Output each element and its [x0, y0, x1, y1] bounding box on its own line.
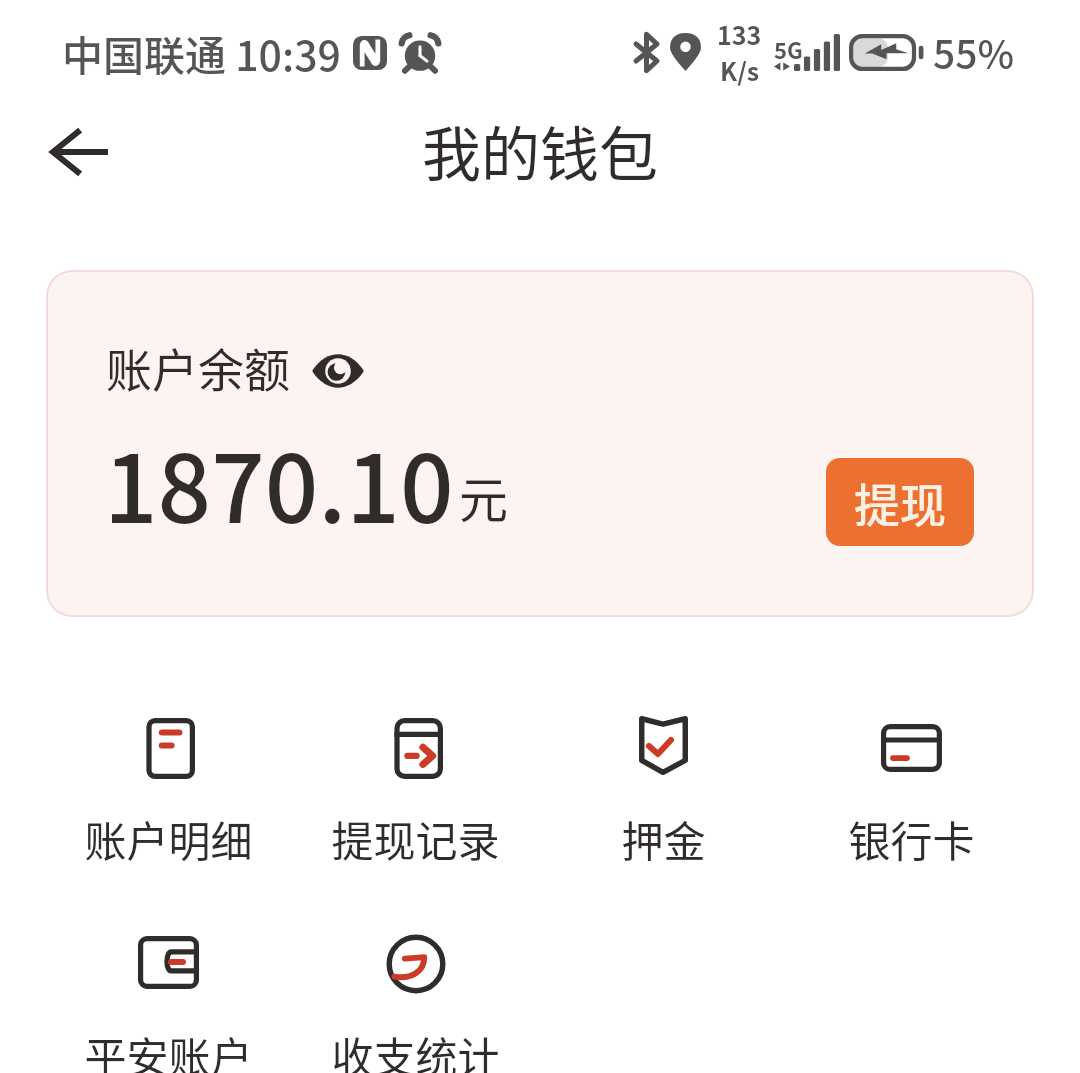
- button[interactable]: 提现记录: [292, 698, 539, 883]
- staticText: 我的钱包: [422, 108, 659, 193]
- staticText: 平安账户: [84, 1024, 253, 1073]
- staticText: 账户明细: [84, 808, 253, 869]
- staticText: 押金: [621, 808, 706, 869]
- button[interactable]: 银行卡: [787, 698, 1035, 883]
- staticText: 5G: [774, 33, 803, 65]
- button[interactable]: 收支统计: [292, 914, 539, 1073]
- staticText: 133: [717, 16, 762, 52]
- staticText: 55%: [933, 24, 1015, 80]
- staticText: 元: [459, 461, 509, 532]
- button[interactable]: Back: [22, 98, 136, 202]
- staticText: 账户余额: [106, 334, 290, 401]
- button[interactable]: Toggle balance visibility: [312, 342, 364, 394]
- button[interactable]: 账户明细: [45, 698, 292, 883]
- button[interactable]: 平安账户: [45, 914, 292, 1073]
- staticText: K/s: [720, 52, 760, 88]
- staticText: 提现记录: [331, 808, 500, 869]
- staticText: 提现: [854, 469, 946, 536]
- button[interactable]: 提现: [826, 458, 974, 546]
- button[interactable]: 押金: [539, 698, 787, 883]
- staticText: 银行卡: [848, 808, 975, 869]
- staticText: 中国联通 10:39: [62, 23, 341, 82]
- staticText: 1870.10: [104, 414, 454, 550]
- staticText: 收支统计: [331, 1024, 500, 1073]
